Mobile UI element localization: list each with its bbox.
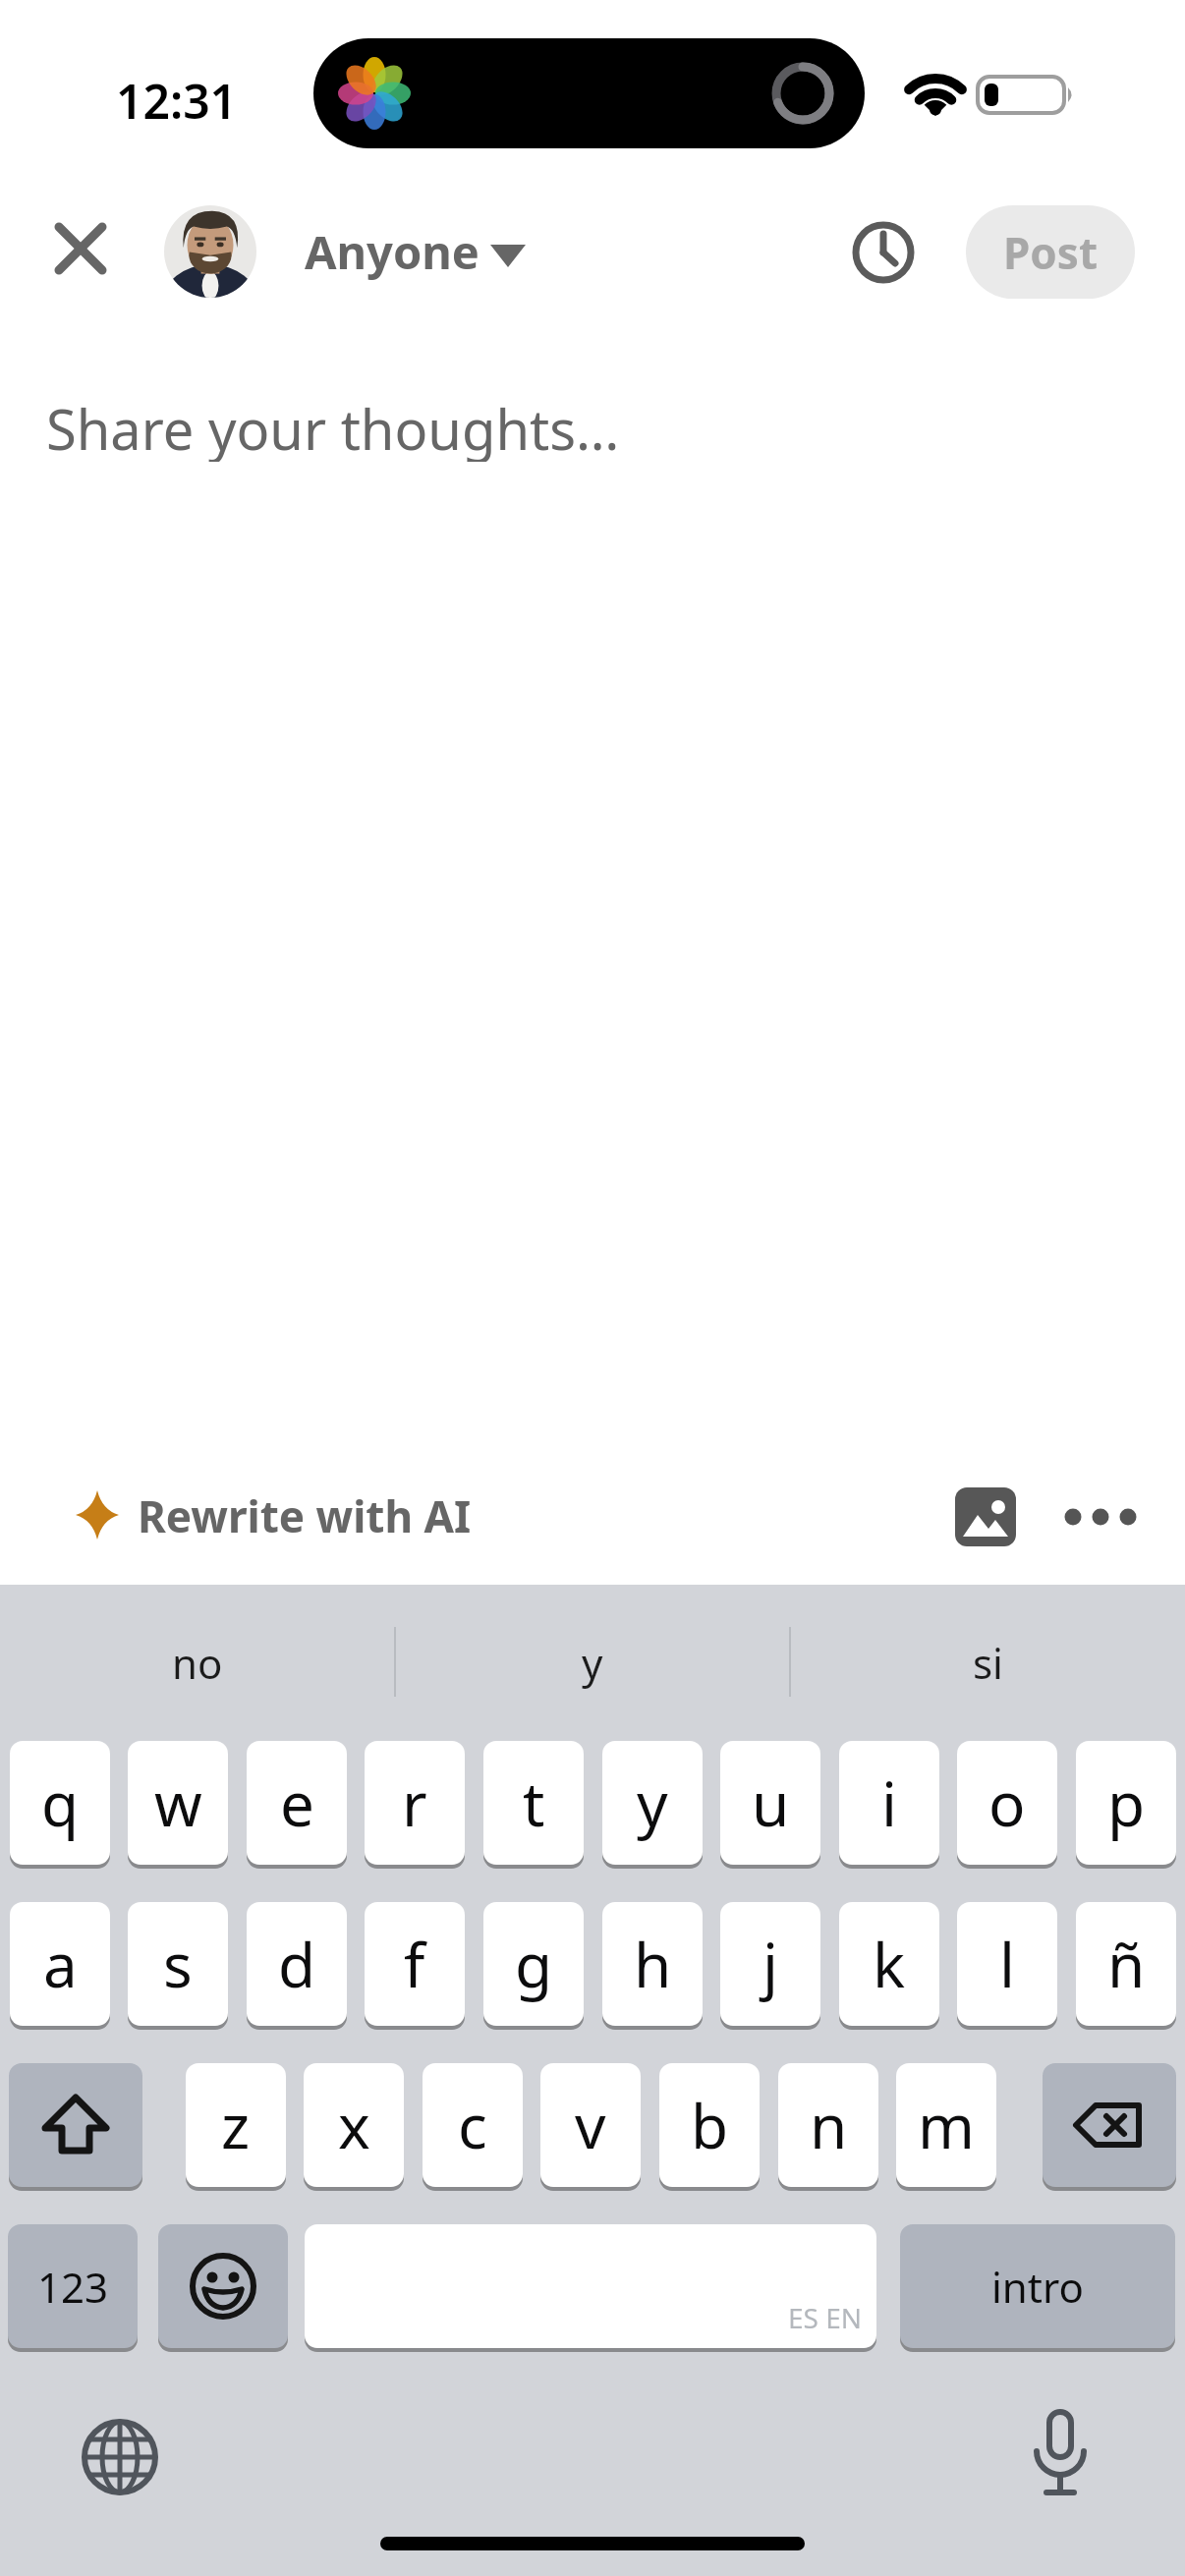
button[interactable]: t — [483, 1741, 584, 1865]
staticText: i — [881, 1762, 897, 1844]
staticText: u — [752, 1762, 790, 1844]
button[interactable]: d — [247, 1902, 347, 2026]
staticText: x — [338, 2084, 370, 2166]
staticText: z — [221, 2084, 251, 2166]
staticText: Share your thoughts… — [46, 391, 620, 462]
staticText: m — [918, 2084, 975, 2166]
staticText: si — [973, 1635, 1003, 1691]
staticText: p — [1107, 1762, 1146, 1844]
button[interactable]: no — [0, 1627, 395, 1698]
button[interactable]: h — [602, 1902, 703, 2026]
button[interactable]: b — [659, 2063, 760, 2187]
staticText: w — [154, 1762, 202, 1844]
button[interactable] — [851, 220, 916, 285]
button[interactable]: si — [790, 1627, 1185, 1698]
staticText: ES EN — [788, 2299, 863, 2336]
button[interactable]: k — [839, 1902, 939, 2026]
button[interactable]: n — [778, 2063, 878, 2187]
button[interactable]: f — [365, 1902, 465, 2026]
staticText: 123 — [37, 2259, 109, 2315]
button[interactable] — [76, 2413, 164, 2501]
staticText: r — [402, 1762, 427, 1844]
staticText: y — [637, 1762, 668, 1844]
button[interactable]: c — [423, 2063, 523, 2187]
staticText: v — [575, 2084, 606, 2166]
staticText: j — [762, 1923, 778, 2005]
button[interactable]: ES EN — [305, 2224, 876, 2348]
staticText: no — [172, 1635, 223, 1691]
button[interactable]: q — [10, 1741, 110, 1865]
button[interactable]: v — [540, 2063, 641, 2187]
button[interactable]: o — [957, 1741, 1057, 1865]
button[interactable]: j — [720, 1902, 820, 2026]
staticText: Anyone — [305, 220, 480, 283]
staticText: Post — [1003, 223, 1099, 282]
staticText: c — [458, 2084, 487, 2166]
staticText: l — [999, 1923, 1015, 2005]
button[interactable] — [9, 2063, 142, 2187]
button[interactable] — [1043, 2063, 1176, 2187]
button[interactable]: intro — [900, 2224, 1175, 2348]
button[interactable]: m — [896, 2063, 996, 2187]
staticText: y — [582, 1635, 603, 1691]
button[interactable]: Post — [966, 205, 1135, 299]
staticText: q — [41, 1762, 80, 1844]
staticText: b — [691, 2084, 729, 2166]
button[interactable] — [1055, 1487, 1146, 1546]
button[interactable]: ñ — [1076, 1902, 1176, 2026]
staticText: Rewrite with AI — [138, 1486, 472, 1545]
staticText: k — [873, 1923, 906, 2005]
button[interactable]: p — [1076, 1741, 1176, 1865]
button[interactable]: z — [186, 2063, 286, 2187]
button[interactable]: e — [247, 1741, 347, 1865]
staticText: ñ — [1107, 1923, 1146, 2005]
staticText: f — [404, 1923, 425, 2005]
staticText: n — [810, 2084, 848, 2166]
button[interactable]: x — [304, 2063, 404, 2187]
button[interactable] — [164, 205, 256, 298]
button[interactable]: a — [10, 1902, 110, 2026]
staticText: s — [163, 1923, 193, 2005]
button[interactable] — [1016, 2408, 1104, 2506]
staticText: d — [278, 1923, 316, 2005]
button[interactable]: u — [720, 1741, 820, 1865]
button[interactable]: s — [128, 1902, 228, 2026]
button[interactable] — [49, 217, 112, 280]
staticText: h — [634, 1923, 672, 2005]
staticText: o — [988, 1762, 1026, 1844]
button[interactable]: Anyone — [305, 219, 560, 284]
button[interactable]: i — [839, 1741, 939, 1865]
staticText: 12:31 — [116, 69, 238, 124]
button[interactable] — [955, 1487, 1016, 1546]
staticText: g — [515, 1923, 553, 2005]
staticText: a — [43, 1923, 78, 2005]
button[interactable]: Rewrite with AI — [138, 1485, 491, 1546]
button[interactable]: r — [365, 1741, 465, 1865]
button[interactable]: y — [395, 1627, 790, 1698]
button[interactable]: l — [957, 1902, 1057, 2026]
button[interactable]: w — [128, 1741, 228, 1865]
button[interactable] — [158, 2224, 288, 2348]
button[interactable]: g — [483, 1902, 584, 2026]
staticText: intro — [991, 2259, 1084, 2315]
button[interactable]: 123 — [8, 2224, 138, 2348]
button[interactable]: y — [602, 1741, 703, 1865]
staticText: t — [523, 1762, 545, 1844]
staticText: e — [280, 1762, 314, 1844]
